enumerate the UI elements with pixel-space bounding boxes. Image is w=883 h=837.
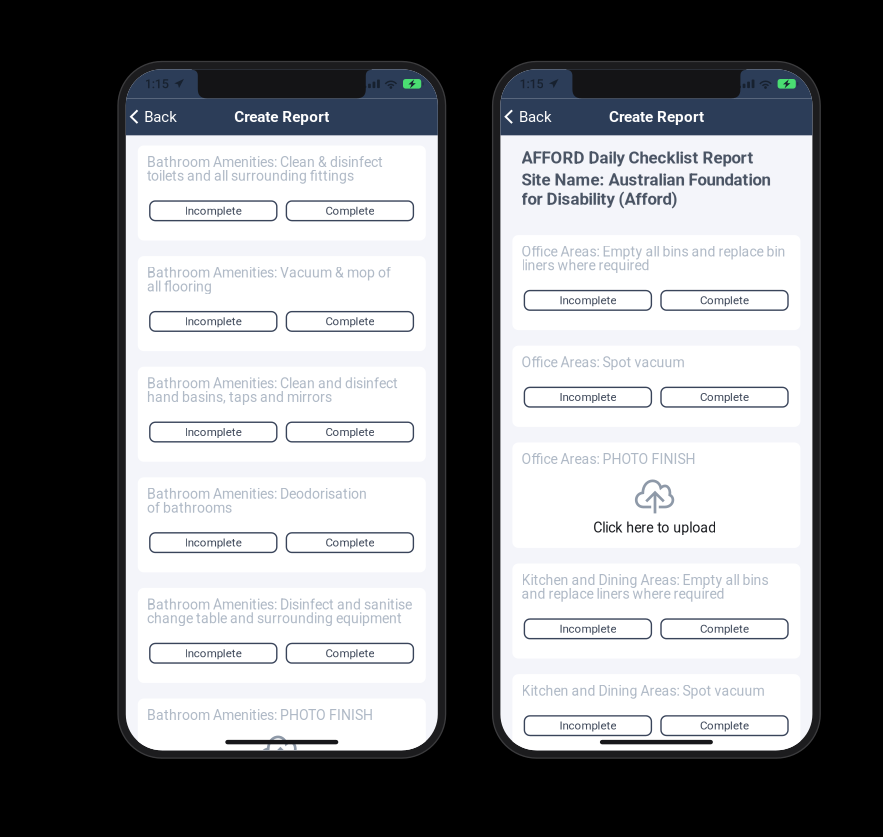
staticText: Back: [144, 108, 177, 125]
staticText: Bathroom Amenities: Vacuum & mop of all …: [147, 265, 391, 295]
button[interactable]: Incomplete: [524, 716, 651, 735]
staticText: Bathroom Amenities: Clean and disinfect …: [147, 375, 398, 405]
button[interactable]: Incomplete: [150, 312, 277, 331]
staticText: Complete: [325, 425, 374, 439]
staticText: Office Areas: Empty all bins and replace…: [522, 244, 786, 274]
staticText: Incomplete: [185, 536, 242, 549]
staticText: Incomplete: [185, 204, 242, 217]
staticText: Bathroom Amenities: Clean & disinfect to…: [147, 154, 383, 184]
staticText: Office Areas: PHOTO FINISH: [522, 451, 696, 467]
button[interactable]: Back: [500, 101, 560, 132]
staticText: Kitchen and Dining Areas: Empty all bins…: [522, 572, 769, 602]
staticText: Incomplete: [559, 294, 616, 307]
staticText: Complete: [325, 315, 374, 328]
staticText: Incomplete: [559, 622, 616, 635]
button[interactable]: Incomplete: [150, 643, 277, 663]
button[interactable]: Complete: [661, 291, 788, 310]
button[interactable]: Complete: [286, 422, 413, 442]
button[interactable]: Incomplete: [524, 291, 651, 310]
staticText: Incomplete: [185, 646, 242, 660]
staticText: Bathroom Amenities: PHOTO FINISH: [147, 707, 373, 723]
staticText: Complete: [325, 536, 374, 549]
staticText: Complete: [700, 390, 749, 404]
staticText: AFFORD Daily Checklist Report: [522, 148, 754, 167]
button[interactable]: Incomplete: [524, 387, 651, 407]
staticText: 1:15: [145, 76, 169, 91]
staticText: Incomplete: [559, 390, 616, 404]
staticText: Bathroom Amenities: Deodorisation of bat…: [147, 486, 367, 516]
staticText: Complete: [700, 622, 749, 635]
button[interactable]: Incomplete: [150, 533, 277, 552]
staticText: 1:15: [519, 76, 543, 91]
button[interactable]: Complete: [286, 643, 413, 663]
staticText: Complete: [700, 294, 749, 307]
staticText: Bathroom Amenities: Disinfect and saniti…: [147, 596, 412, 627]
staticText: Create Report: [609, 108, 704, 126]
staticText: Site Name: Australian Foundation for Dis…: [522, 170, 771, 209]
staticText: Incomplete: [185, 315, 242, 328]
staticText: Office Areas: Spot vacuum: [522, 354, 685, 371]
staticText: Complete: [700, 719, 749, 732]
button[interactable]: Complete: [286, 201, 413, 221]
staticText: Incomplete: [559, 719, 616, 732]
staticText: Complete: [325, 204, 374, 217]
staticText: Incomplete: [185, 425, 242, 439]
staticText: Kitchen and Dining Areas: Spot vacuum: [522, 683, 765, 699]
button[interactable]: Complete: [661, 387, 788, 407]
button[interactable]: Click here to upload: [147, 731, 413, 792]
button[interactable]: Complete: [661, 619, 788, 639]
button[interactable]: Click here to upload: [522, 475, 788, 536]
button[interactable]: Incomplete: [150, 201, 277, 221]
button[interactable]: Complete: [661, 716, 788, 735]
staticText: Back: [519, 108, 552, 125]
button[interactable]: Incomplete: [150, 422, 277, 442]
button[interactable]: Complete: [286, 533, 413, 552]
button[interactable]: Back: [126, 101, 185, 132]
staticText: Complete: [325, 646, 374, 660]
staticText: Create Report: [234, 108, 329, 126]
button[interactable]: Complete: [286, 312, 413, 331]
staticText: Click here to upload: [593, 519, 716, 536]
button[interactable]: Incomplete: [524, 619, 651, 639]
